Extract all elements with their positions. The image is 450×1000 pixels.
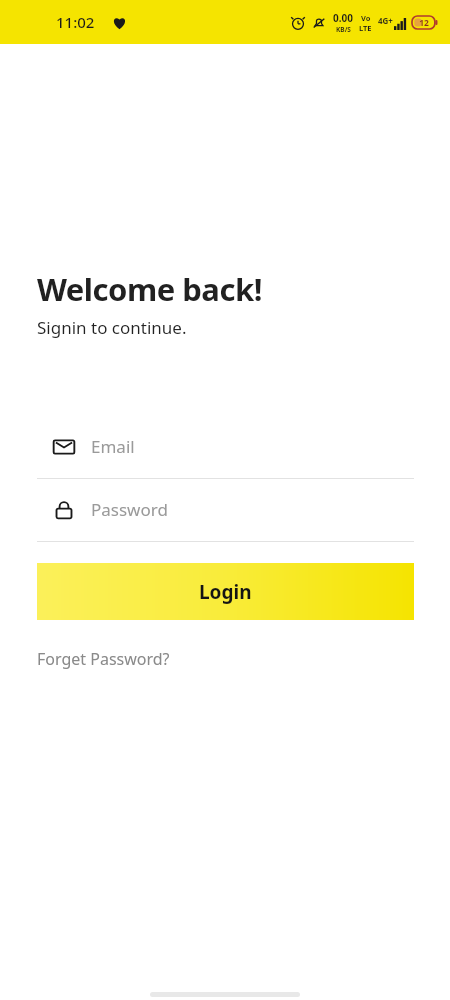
staticText: 4G+ [378, 15, 393, 26]
staticText: Signin to continue. [37, 316, 187, 339]
staticText: Welcome back! [37, 268, 262, 310]
staticText: 12 [419, 17, 429, 29]
staticText: LTE [359, 23, 372, 33]
staticText: Vo [361, 13, 371, 23]
staticText: Password [91, 498, 168, 521]
other: Password [53, 499, 75, 521]
staticText: 11:02 [56, 12, 95, 32]
staticText: 0.00 [333, 11, 353, 25]
staticText: Login [199, 579, 252, 605]
staticText: KB/S [336, 25, 351, 34]
staticText: Forget Password? [37, 648, 170, 670]
button[interactable]: Login [37, 563, 414, 620]
other: Email [53, 436, 75, 458]
button[interactable]: Forget Password? [37, 648, 170, 670]
staticText: Email [91, 435, 135, 458]
